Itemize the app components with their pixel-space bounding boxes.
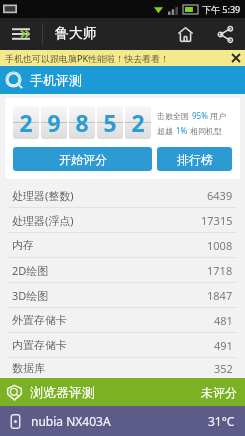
staticText: 5 xyxy=(103,107,117,138)
staticText: 491 xyxy=(214,338,233,353)
staticText: 手机也可以跟电脑PK性能啦！快去看看！ xyxy=(5,52,170,64)
button[interactable]: 开始评分 xyxy=(13,147,152,171)
staticText: 数据库 xyxy=(12,361,45,375)
button[interactable]: Close xyxy=(227,50,245,66)
staticText: 未评分 xyxy=(201,385,237,400)
staticText: 1% xyxy=(176,125,188,136)
button[interactable]: 3D绘图 xyxy=(0,283,245,307)
button[interactable]: 处理器(浮点) xyxy=(0,208,245,232)
staticText: 481 xyxy=(214,313,233,328)
staticText: 6439 xyxy=(207,188,233,203)
button[interactable]: 手机评测 xyxy=(0,66,245,94)
button[interactable]: 数据库 xyxy=(0,358,245,378)
button[interactable]: 内置存储卡 xyxy=(0,333,245,357)
staticText: 内存 xyxy=(12,238,34,252)
staticText: 9 xyxy=(47,107,61,138)
button[interactable]: 外置存储卡 xyxy=(0,308,245,332)
staticText: 击败全国 xyxy=(157,110,192,121)
button[interactable]: nubia NX403A xyxy=(0,406,245,436)
staticText: 用户 xyxy=(208,110,227,121)
staticText: 处理器(浮点) xyxy=(12,213,74,228)
button[interactable]: Home xyxy=(165,18,205,50)
staticText: 2 xyxy=(131,107,145,138)
staticText: 2D绘图 xyxy=(12,263,49,278)
staticText: 内置存储卡 xyxy=(12,338,67,352)
staticText: 鲁大师 xyxy=(55,25,97,43)
button[interactable]: 内存 xyxy=(0,233,245,257)
staticText: 处理器(整数) xyxy=(12,188,74,203)
staticText: 下午 5:39 xyxy=(202,3,241,15)
button[interactable]: Menu xyxy=(0,18,42,50)
button[interactable]: 浏览器评测 xyxy=(0,378,245,406)
button[interactable]: 处理器(整数) xyxy=(0,183,245,207)
staticText: 外置存储卡 xyxy=(12,313,67,327)
staticText: 17315 xyxy=(201,213,233,228)
button[interactable]: 排行榜 xyxy=(157,147,232,171)
staticText: 2 xyxy=(19,107,33,138)
staticText: 开始评分 xyxy=(59,152,107,167)
button[interactable]: 手机也可以跟电脑PK性能啦！快去看看！ xyxy=(0,50,245,66)
staticText: 1008 xyxy=(207,238,233,253)
staticText: 手机评测 xyxy=(30,72,82,88)
button[interactable]: Share xyxy=(205,18,245,50)
staticText: 相同机型 xyxy=(188,125,223,136)
staticText: 1718 xyxy=(207,263,233,278)
staticText: 352 xyxy=(214,361,233,376)
button[interactable]: 2D绘图 xyxy=(0,258,245,282)
staticText: 31°C xyxy=(208,413,235,429)
staticText: 排行榜 xyxy=(177,152,213,167)
staticText: nubia NX403A xyxy=(31,413,111,429)
staticText: 超越 xyxy=(157,125,176,136)
staticText: 3D绘图 xyxy=(12,288,49,303)
staticText: 浏览器评测 xyxy=(30,384,95,400)
staticText: 1847 xyxy=(207,288,233,303)
staticText: 8 xyxy=(75,107,89,138)
staticText: 95% xyxy=(192,110,208,121)
